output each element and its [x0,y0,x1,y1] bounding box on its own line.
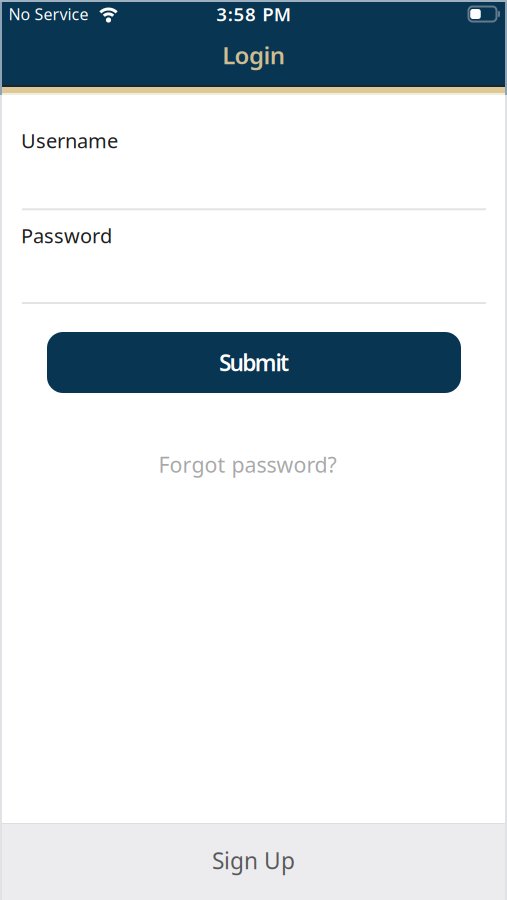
staticText: Username [21,127,118,154]
staticText: 3:58 PM [216,2,291,26]
staticText: Password [21,222,112,249]
staticText: Sign Up [212,845,295,875]
button[interactable]: Submit [47,332,461,393]
staticText: Submit [219,347,289,377]
button[interactable]: Forgot password? [164,453,342,476]
staticText: No Service [8,3,88,25]
staticText: Forgot password? [158,450,336,479]
staticText: Login [222,39,285,71]
button[interactable]: Sign Up [0,823,507,900]
